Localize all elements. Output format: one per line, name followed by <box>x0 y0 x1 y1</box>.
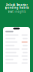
staticText: spending habits <box>4 6 28 9</box>
staticText: Smart insights <box>7 10 25 13</box>
staticText: Unlock Smarter <box>5 3 27 7</box>
